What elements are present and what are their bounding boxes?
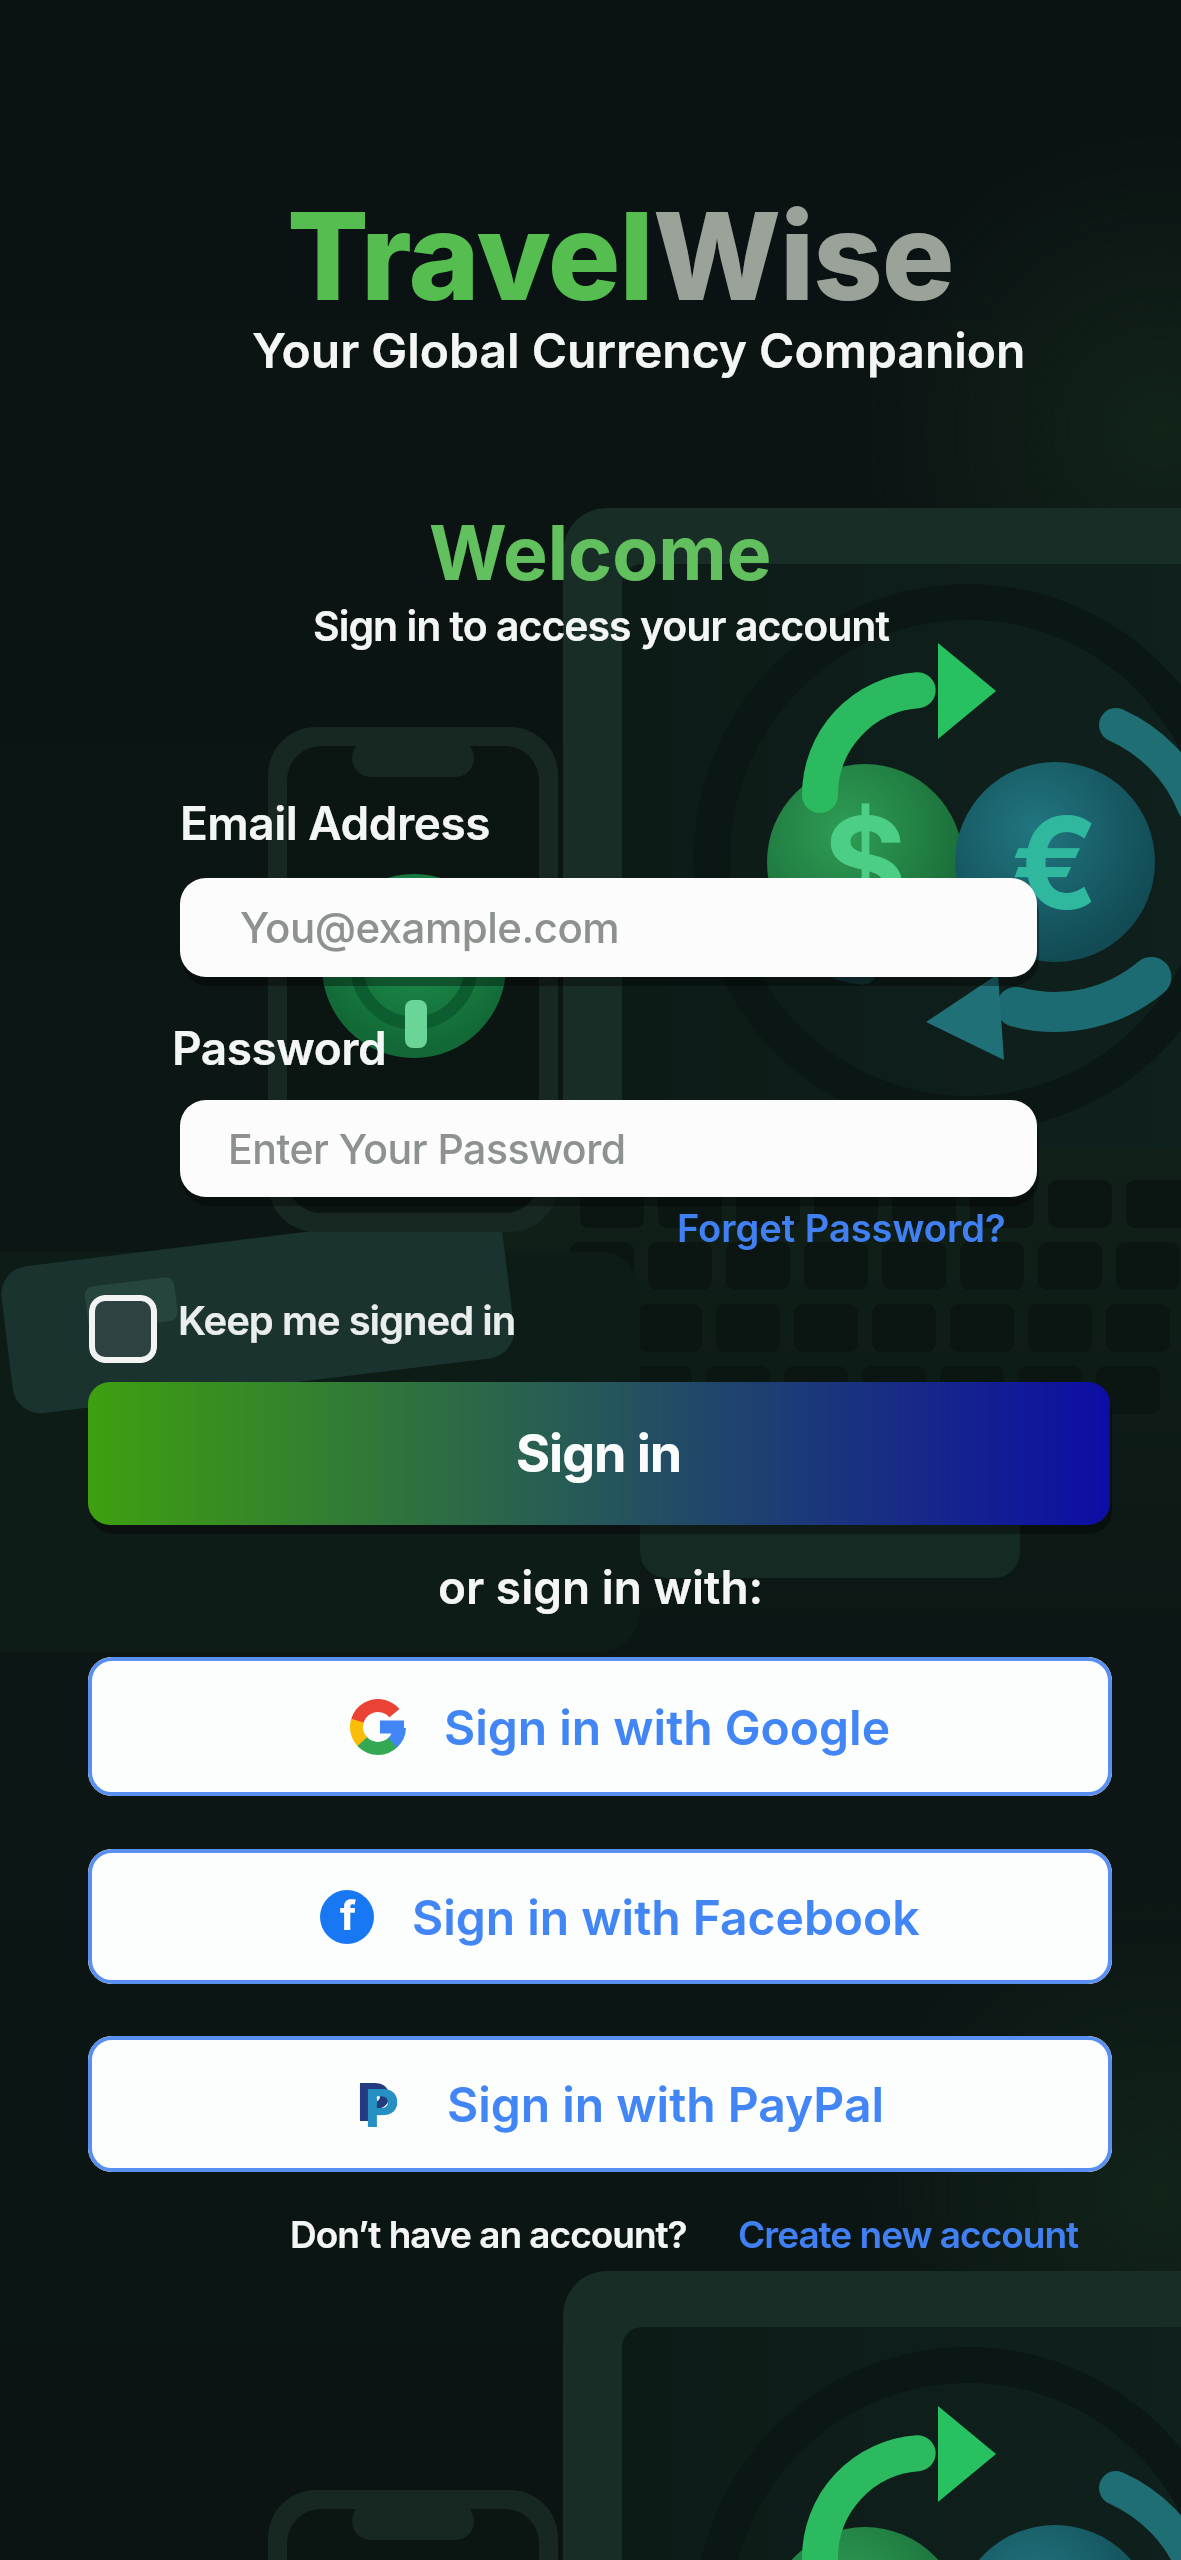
- staticText: You@example.com: [240, 902, 620, 953]
- staticText: Password: [172, 1020, 387, 1076]
- button[interactable]: P: [88, 2036, 1112, 2172]
- staticText: Keep me signed in: [178, 1296, 516, 1344]
- staticText: Sign in with Facebook: [412, 1888, 920, 1946]
- button[interactable]: Forget Password?: [677, 1205, 1006, 1251]
- button[interactable]: [89, 1295, 509, 1363]
- button[interactable]: Create new account: [738, 2212, 1079, 2257]
- staticText: Sign in with PayPal: [447, 2075, 885, 2133]
- staticText: €: [1011, 785, 1099, 940]
- staticText: Enter Your Password: [228, 1124, 626, 1174]
- staticText: $: [823, 785, 907, 940]
- staticText: P: [357, 2071, 391, 2125]
- button[interactable]: Sign in with Google: [88, 1657, 1112, 1796]
- button[interactable]: f: [88, 1849, 1112, 1984]
- staticText: Sign in: [516, 1422, 682, 1485]
- button[interactable]: Sign in: [88, 1382, 1110, 1525]
- staticText: Welcome: [429, 507, 772, 598]
- staticText: Travel: [287, 183, 653, 329]
- staticText: Email Address: [180, 795, 491, 851]
- staticText: Don’t have an account?: [290, 2212, 687, 2257]
- staticText: or sign in with:: [438, 1559, 764, 1615]
- staticText: Wise: [653, 183, 954, 329]
- staticText: Sign in to access your account: [313, 601, 889, 651]
- staticText: f: [340, 1891, 356, 1939]
- button[interactable]: You@example.com: [180, 878, 1037, 977]
- button[interactable]: Enter Your Password: [180, 1100, 1037, 1197]
- staticText: P: [365, 2077, 399, 2131]
- staticText: Your Global Currency Companion: [252, 321, 1026, 379]
- staticText: Sign in with Google: [444, 1698, 891, 1756]
